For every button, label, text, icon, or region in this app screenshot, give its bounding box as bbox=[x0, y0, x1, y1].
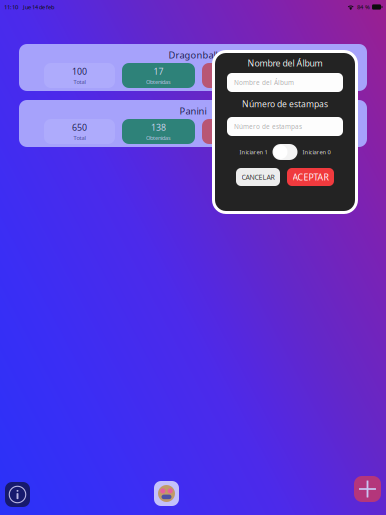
staticText: 138 bbox=[151, 121, 166, 133]
staticText: Iniciar en 0 bbox=[302, 148, 330, 156]
staticText: Obtenidas bbox=[146, 134, 171, 141]
staticText: Total bbox=[73, 78, 85, 85]
button[interactable]: Dragonball bbox=[19, 44, 367, 91]
staticText: 17 bbox=[153, 65, 163, 77]
staticText: Nombre del Álbum bbox=[247, 57, 322, 69]
staticText: 100 bbox=[72, 65, 87, 77]
button[interactable]: Iniciar en 1 o 0 bbox=[272, 144, 297, 160]
button[interactable]: CANCELAR bbox=[236, 168, 280, 186]
button[interactable]: Favoritos bbox=[154, 481, 179, 506]
staticText: ACEPTAR bbox=[292, 171, 328, 183]
staticText: Iniciar en 1 bbox=[239, 148, 267, 156]
staticText: Jue 14 de feb bbox=[23, 3, 54, 11]
button[interactable]: Panini bbox=[19, 100, 367, 147]
staticText: Obtenidas bbox=[146, 78, 171, 85]
staticText: CANCELAR bbox=[241, 172, 274, 182]
button[interactable]: ACEPTAR bbox=[287, 168, 334, 186]
staticText: 11:10 bbox=[4, 3, 18, 11]
button[interactable]: Añadir álbum bbox=[354, 476, 381, 502]
staticText: 650 bbox=[72, 121, 87, 133]
staticText: Dragonball bbox=[168, 49, 217, 61]
staticText: 84 % bbox=[357, 3, 370, 11]
staticText: Total bbox=[73, 134, 85, 141]
button[interactable]: Información bbox=[5, 482, 30, 507]
staticText: Número de estampas bbox=[242, 98, 328, 110]
staticText: Nombre del Álbum bbox=[234, 78, 294, 87]
staticText: Panini bbox=[179, 105, 206, 117]
staticText: Número de estampas bbox=[234, 122, 302, 131]
